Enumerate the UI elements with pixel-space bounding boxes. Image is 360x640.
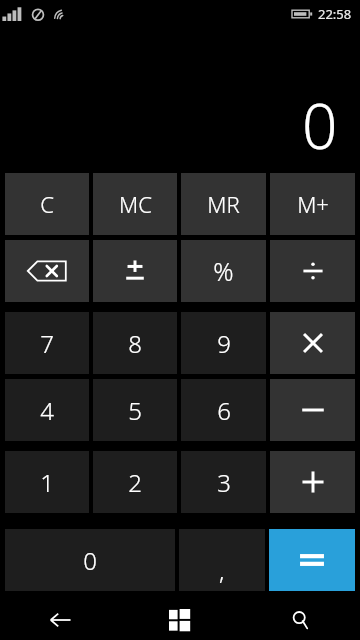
button[interactable]: 8	[93, 312, 177, 374]
button[interactable]: 7	[5, 312, 89, 374]
staticText: 22:58	[318, 5, 352, 23]
staticText: 2	[128, 466, 142, 499]
staticText: 9	[217, 327, 231, 360]
button[interactable]: 3	[181, 451, 266, 513]
staticText: 7	[40, 327, 54, 360]
button[interactable]: %	[181, 240, 266, 302]
button[interactable]: Minus	[270, 379, 355, 441]
staticText: 3	[217, 466, 231, 499]
staticText: 5	[128, 394, 142, 427]
staticText: 4	[40, 394, 54, 427]
staticText: M+	[297, 189, 329, 219]
button[interactable]: 0	[5, 529, 175, 591]
button[interactable]: Search	[240, 600, 360, 640]
button[interactable]: Equals	[269, 529, 355, 591]
button[interactable]: MC	[93, 173, 177, 235]
button[interactable]: Backspace	[5, 240, 89, 302]
button[interactable]: 5	[93, 379, 177, 441]
button[interactable]: Back	[0, 600, 120, 640]
button[interactable]: 2	[93, 451, 177, 513]
button[interactable]: Multiply	[270, 312, 355, 374]
button[interactable]: 6	[181, 379, 266, 441]
staticText: 8	[128, 327, 142, 360]
button[interactable]: 4	[5, 379, 89, 441]
button[interactable]: Divide	[270, 240, 355, 302]
staticText: 6	[217, 394, 231, 427]
button[interactable]: C	[5, 173, 89, 235]
button[interactable]: Start	[120, 600, 240, 640]
staticText: C	[40, 189, 54, 219]
button[interactable]: Plus minus	[93, 240, 177, 302]
staticText: MR	[207, 189, 240, 219]
staticText: %	[213, 254, 234, 288]
button[interactable]: M+	[270, 173, 355, 235]
button[interactable]: 9	[181, 312, 266, 374]
button[interactable]: Plus	[270, 451, 355, 513]
button[interactable]: ,	[179, 529, 265, 591]
button[interactable]: 1	[5, 451, 89, 513]
staticText: 0	[302, 83, 338, 167]
staticText: 0	[83, 544, 97, 577]
staticText: MC	[119, 189, 152, 219]
staticText: ,	[219, 554, 225, 587]
button[interactable]: MR	[181, 173, 266, 235]
staticText: 1	[40, 466, 54, 499]
